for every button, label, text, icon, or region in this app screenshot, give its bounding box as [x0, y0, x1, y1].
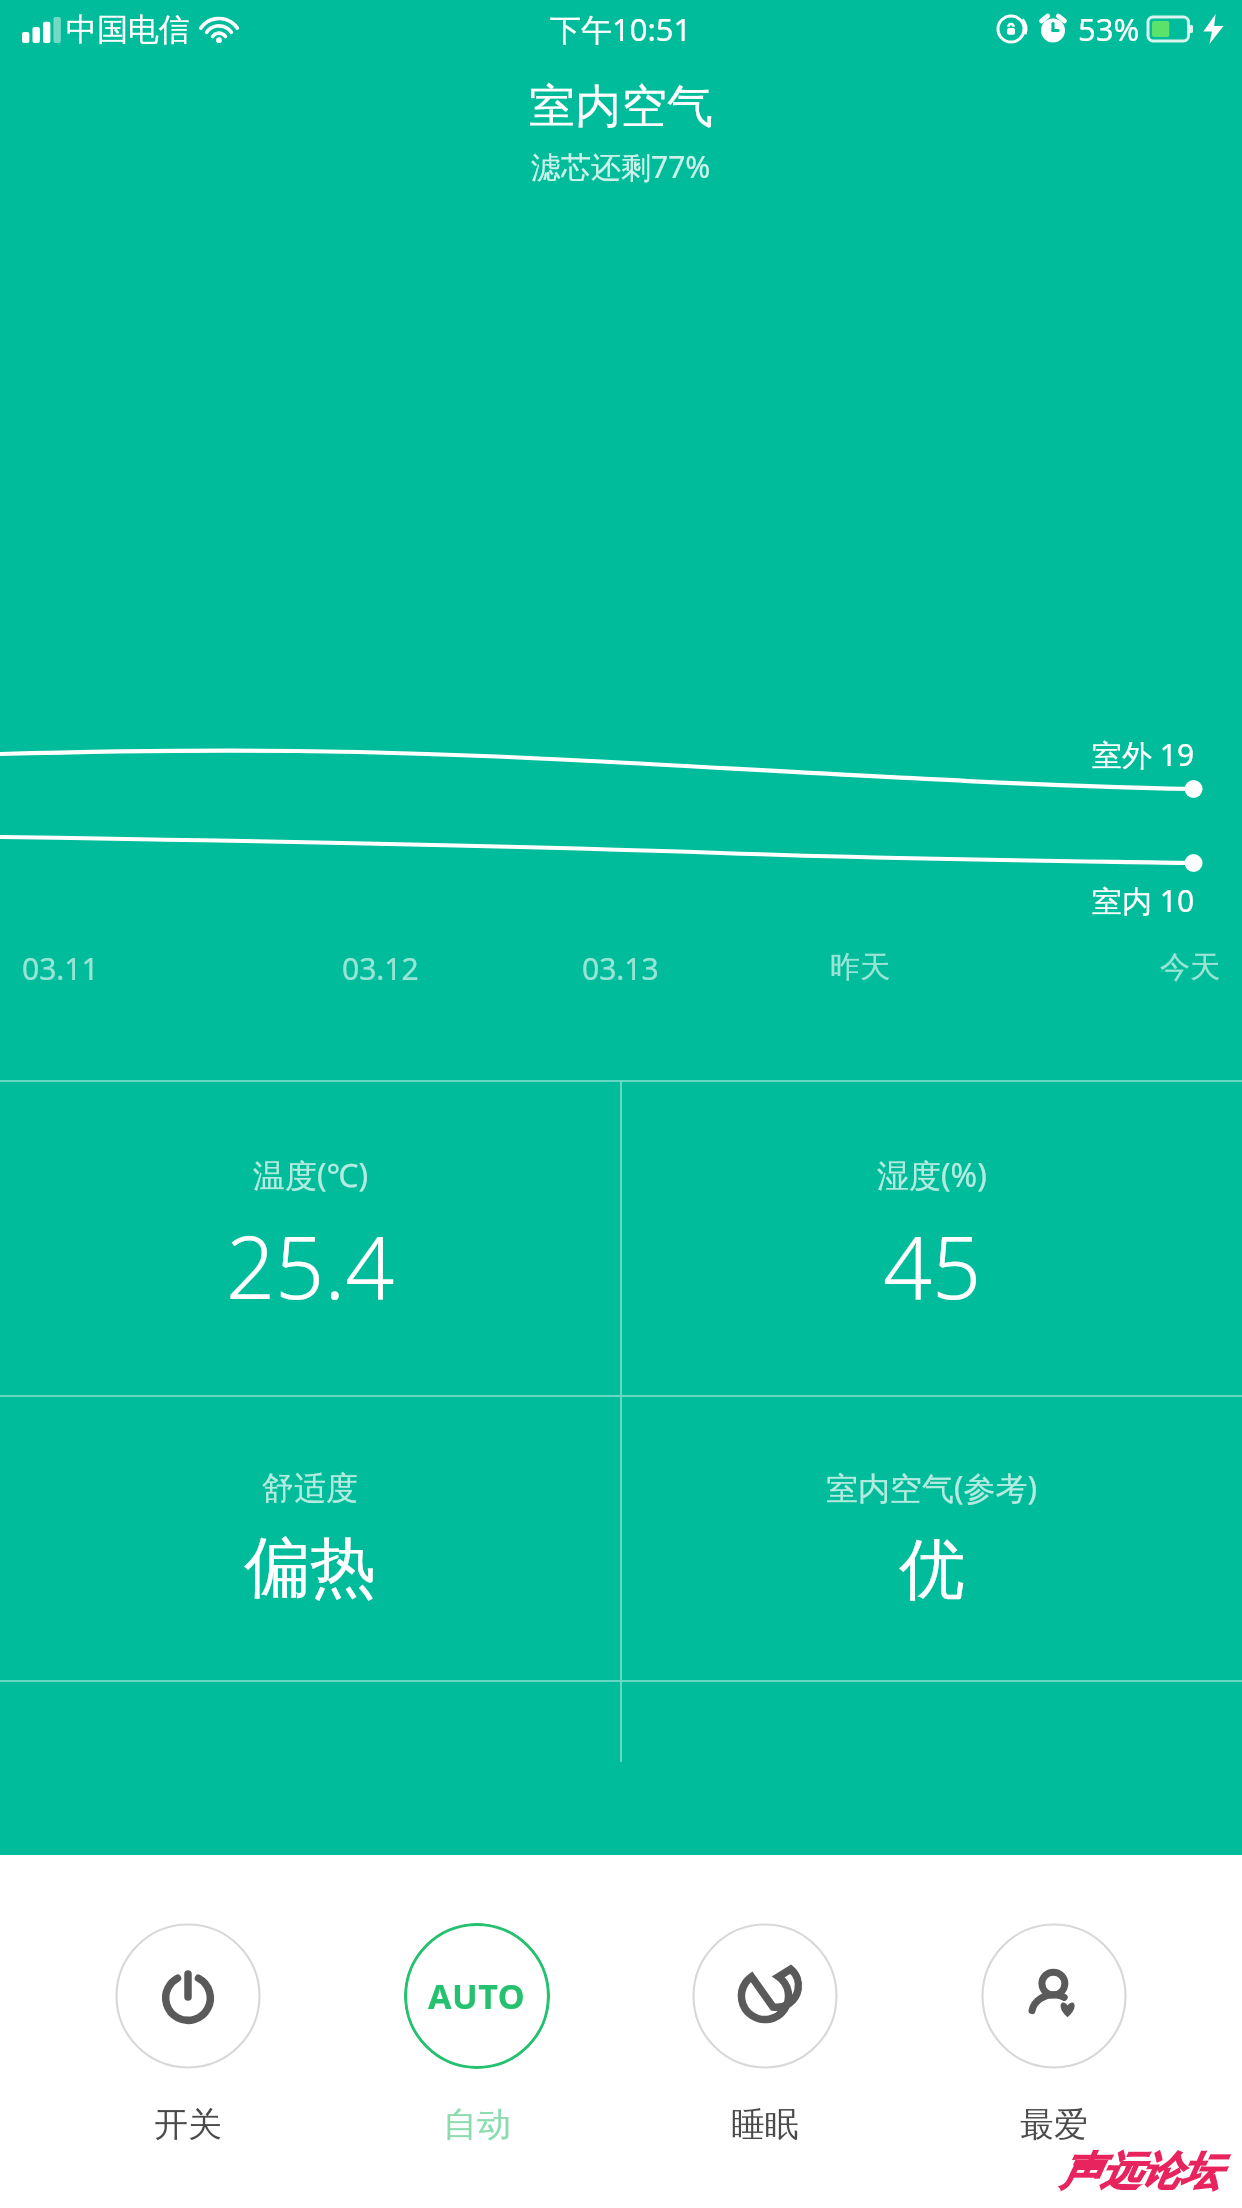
staticText: 03.11	[22, 948, 99, 989]
staticText: 睡眠	[731, 2103, 799, 2146]
staticText: 03.13	[582, 948, 659, 989]
button[interactable]: 睡眠	[665, 1923, 865, 2146]
button[interactable]: 开关	[88, 1923, 288, 2146]
staticText: 舒适度	[262, 1468, 358, 1508]
staticText: 偏热	[244, 1526, 376, 1609]
staticText: 25.4	[226, 1207, 395, 1324]
staticText: 自动	[443, 2103, 511, 2146]
staticText: 中国电信	[66, 10, 190, 49]
staticText: 室外 19	[1092, 734, 1195, 775]
button[interactable]: 温度(℃)	[0, 1082, 620, 1395]
staticText: 室内空气(参考)	[826, 1466, 1038, 1510]
staticText: 开关	[154, 2103, 222, 2146]
staticText: 室内 10	[1092, 880, 1195, 921]
button[interactable]: 最爱	[954, 1923, 1154, 2146]
button[interactable]: 湿度(%)	[622, 1082, 1242, 1395]
staticText: AUTO	[428, 1973, 526, 2019]
staticText: 温度(℃)	[253, 1153, 369, 1197]
staticText: 滤芯还剩77%	[531, 146, 711, 187]
button[interactable]: 室内空气(参考)	[622, 1397, 1242, 1680]
button[interactable]: 舒适度	[0, 1397, 620, 1680]
staticText: 声远论坛	[1060, 2146, 1220, 2196]
staticText: 45	[883, 1207, 982, 1324]
staticText: 下午10:51	[550, 8, 692, 50]
staticText: 湿度(%)	[877, 1153, 987, 1197]
button[interactable]: 自动	[377, 1923, 577, 2146]
staticText: 优	[899, 1528, 965, 1611]
staticText: 最爱	[1020, 2103, 1088, 2146]
staticText: 今天	[1160, 948, 1220, 986]
staticText: 室内空气	[529, 78, 713, 136]
staticText: 53%	[1078, 8, 1140, 50]
staticText: 03.12	[342, 948, 419, 989]
staticText: 昨天	[830, 948, 890, 986]
